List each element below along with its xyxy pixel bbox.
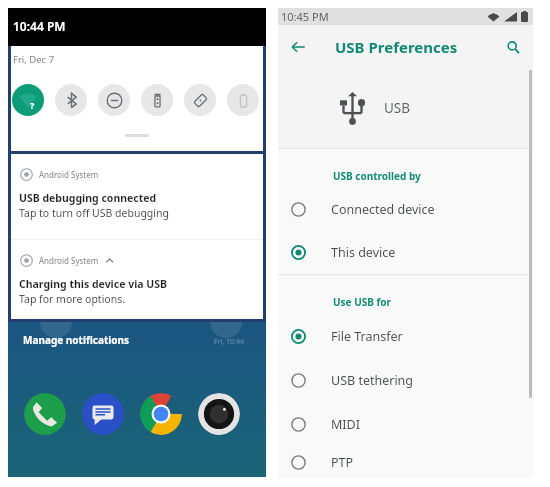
- button[interactable]: Wi-Fi: [12, 84, 44, 116]
- button[interactable]: Bluetooth: [55, 84, 87, 116]
- button[interactable]: This device: [278, 231, 533, 274]
- staticText: Fri, 10:44: [214, 337, 244, 347]
- button[interactable]: Android System: [8, 240, 266, 322]
- button[interactable]: Android System: [8, 154, 266, 239]
- button[interactable]: Manage notifications: [23, 333, 129, 347]
- staticText: Android System: [39, 255, 99, 266]
- button[interactable]: PTP: [278, 446, 533, 478]
- button[interactable]: Search: [502, 36, 524, 58]
- button[interactable]: Flashlight: [141, 84, 173, 116]
- button[interactable]: File Transfer: [278, 314, 533, 358]
- staticText: USB controlled by: [333, 169, 421, 183]
- staticText: Tap for more options.: [19, 292, 126, 306]
- staticText: ?: [30, 99, 35, 111]
- staticText: PTP: [331, 454, 354, 471]
- staticText: USB Preferences: [335, 37, 458, 57]
- staticText: Fri, Dec 7: [13, 53, 55, 66]
- staticText: Use USB for: [333, 295, 392, 309]
- button[interactable]: Do not disturb: [98, 84, 130, 116]
- staticText: Tap to turn off USB debugging: [19, 206, 169, 220]
- staticText: Connected device: [331, 201, 435, 218]
- button[interactable]: Phone: [24, 393, 66, 435]
- button[interactable]: Battery saver: [227, 84, 259, 116]
- staticText: USB: [384, 99, 411, 117]
- staticText: 10:44 PM: [13, 18, 66, 34]
- staticText: MIDI: [331, 416, 360, 433]
- staticText: 10:45 PM: [281, 9, 329, 24]
- button[interactable]: MIDI: [278, 402, 533, 446]
- button[interactable]: USB tethering: [278, 358, 533, 402]
- staticText: This device: [331, 244, 396, 261]
- staticText: USB debugging connected: [19, 191, 157, 205]
- button[interactable]: Chrome: [140, 393, 182, 435]
- button[interactable]: Auto rotate: [184, 84, 216, 116]
- button[interactable]: Back: [287, 36, 309, 58]
- staticText: Android System: [39, 169, 99, 180]
- button[interactable]: Connected device: [278, 188, 533, 231]
- button[interactable]: Camera: [198, 393, 240, 435]
- staticText: File Transfer: [331, 328, 403, 345]
- staticText: Charging this device via USB: [19, 277, 168, 291]
- button[interactable]: Messages: [82, 393, 124, 435]
- staticText: USB tethering: [331, 372, 414, 389]
